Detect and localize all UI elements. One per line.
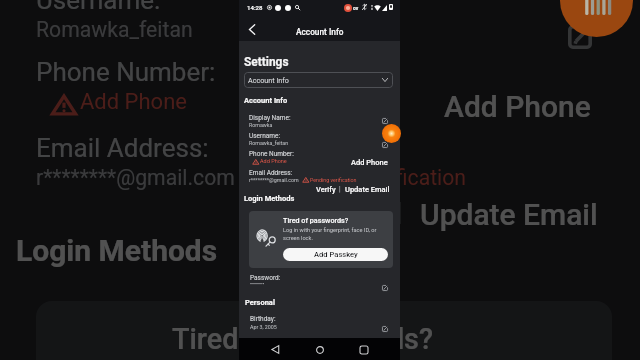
staticText: Account Info	[248, 76, 289, 84]
staticText: Add Phone	[444, 89, 592, 125]
staticText: Pending verification	[310, 177, 357, 183]
button[interactable]	[239, 166, 400, 193]
button[interactable]	[239, 111, 400, 129]
staticText: Romawka_feitan	[249, 140, 289, 146]
staticText: Tired of passwords?	[172, 321, 436, 353]
staticText: Tired of passwords?	[283, 216, 349, 224]
button[interactable]: Back	[267, 341, 284, 358]
staticText: r********@gmail.com	[36, 165, 236, 189]
staticText: Password:	[250, 274, 281, 282]
button[interactable]: Back	[243, 21, 260, 38]
staticText: r********@gmail.com	[249, 177, 299, 183]
staticText: Verify	[316, 185, 336, 194]
button[interactable]: Update Email	[420, 197, 600, 233]
button[interactable]: Home	[311, 341, 328, 358]
button[interactable]: Verify	[304, 197, 384, 233]
staticText: Romawka_feitan	[36, 17, 196, 41]
staticText: Verify	[304, 197, 384, 233]
staticText: Email Address:	[249, 169, 293, 177]
button[interactable]: Add Phone	[444, 89, 592, 125]
button[interactable]: Edit	[382, 326, 388, 332]
staticText: Account Info	[296, 27, 344, 37]
staticText: Phone Number:	[249, 150, 294, 158]
button[interactable]: Add Phone	[351, 158, 388, 167]
staticText: •••••••	[250, 280, 265, 287]
staticText: Phone Number:	[36, 57, 216, 89]
staticText: Personal	[245, 298, 275, 307]
staticText: Update Email	[345, 185, 390, 194]
button[interactable]	[0, 45, 640, 117]
staticText: Pending verification	[280, 165, 468, 189]
button[interactable]: Account Info	[244, 72, 393, 88]
button[interactable]: Update Email	[345, 185, 390, 194]
button[interactable]: Profile	[560, 0, 633, 37]
button[interactable]: Verify	[316, 185, 336, 194]
button[interactable]	[239, 313, 400, 333]
staticText: Log in with your fingerprint, face ID, o…	[283, 227, 383, 242]
staticText: Settings	[244, 55, 289, 69]
staticText: Username:	[249, 132, 281, 140]
staticText: Display Name:	[249, 114, 291, 122]
staticText: Add Phone	[80, 89, 188, 113]
button[interactable]: Edit	[382, 118, 388, 124]
staticText: Email Address:	[36, 133, 212, 165]
staticText: ov	[353, 5, 359, 11]
button[interactable]: Recent apps	[355, 341, 372, 358]
button[interactable]: Edit	[568, 25, 592, 49]
staticText: Birthday:	[250, 315, 276, 323]
staticText: Update Email	[420, 197, 600, 233]
button[interactable]: Edit	[382, 142, 388, 148]
staticText: Add Phone	[260, 158, 287, 164]
staticText: Account Info	[244, 96, 288, 105]
staticText: Login Methods	[244, 194, 295, 203]
button[interactable]	[0, 121, 640, 229]
staticText: Apr 3, 2005	[250, 324, 277, 330]
button[interactable]: Tap indicator	[382, 124, 401, 143]
button[interactable]	[239, 129, 400, 147]
staticText: Username:	[36, 0, 164, 17]
button[interactable]	[0, 0, 640, 45]
button[interactable]: Add Passkey	[283, 248, 388, 261]
staticText: Add Passkey	[314, 250, 358, 259]
staticText: Romawka	[249, 122, 273, 128]
staticText: |	[396, 197, 404, 229]
button[interactable]	[239, 272, 400, 290]
button[interactable]: Edit	[382, 285, 388, 291]
button[interactable]	[239, 147, 400, 165]
staticText: Add Phone	[351, 158, 388, 167]
staticText: |	[339, 185, 341, 193]
staticText: Login Methods	[16, 233, 220, 269]
staticText: 14:28	[247, 4, 263, 11]
